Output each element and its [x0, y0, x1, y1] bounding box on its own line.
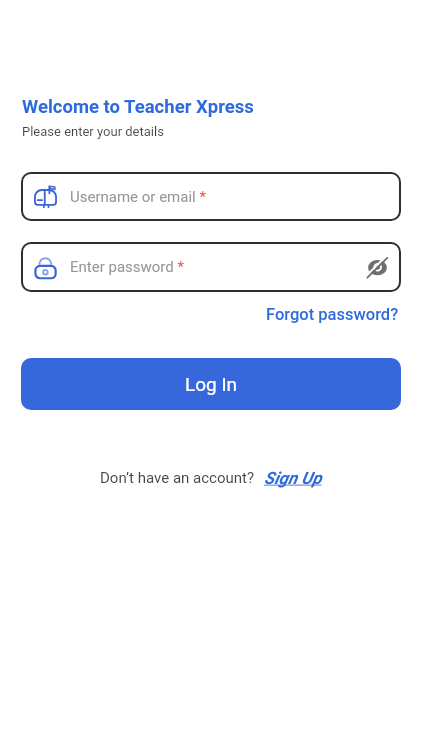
button[interactable]: [363, 253, 391, 281]
staticText: Username or email *: [70, 188, 206, 206]
button[interactable]: Sign Up: [264, 468, 322, 488]
button[interactable]: Log In: [21, 358, 401, 410]
button[interactable]: Enter password *: [21, 242, 401, 292]
staticText: Please enter your details: [22, 124, 164, 139]
button[interactable]: Username or email *: [21, 172, 401, 221]
staticText: Welcome to Teacher Xpress: [22, 96, 254, 118]
staticText: Don’t have an account?: [100, 469, 255, 487]
staticText: Enter password *: [70, 258, 184, 276]
staticText: Forgot password?: [266, 305, 399, 324]
button[interactable]: Forgot password?: [266, 305, 401, 324]
staticText: Sign Up: [264, 468, 322, 488]
staticText: Log In: [185, 373, 238, 395]
